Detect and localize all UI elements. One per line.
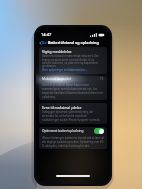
staticText: Batteriets tilstand er væsentligt reduce…	[42, 54, 104, 67]
other: Optimeret batteriopladning til	[94, 128, 104, 134]
staticText: Batteri	[42, 40, 54, 45]
button[interactable]: Maksimal kapacitet	[39, 76, 107, 82]
button[interactable]: Optimeret batteriopladning	[39, 127, 107, 135]
staticText: Til	[100, 77, 104, 81]
staticText: Batteritilstand og opladning	[48, 40, 99, 45]
staticText: Optimeret batteriopladning	[42, 129, 84, 133]
button[interactable]: Vigtig meddelelse	[39, 47, 107, 74]
button[interactable]: Evne til maksimal ydelse	[39, 103, 107, 124]
staticText: Vigtig meddelelse	[42, 49, 72, 54]
staticText: 14:47	[41, 32, 52, 37]
button[interactable]: Flere oplysninger om batteriservice…	[42, 68, 88, 72]
staticText: Indbygget dynamisk ydeevnestyring, der a…	[42, 110, 104, 122]
button[interactable]: Batteri	[38, 39, 55, 46]
staticText: Dette er et mål for batterikapaciteten s…	[42, 83, 104, 99]
staticText: Maksimal kapacitet	[42, 77, 71, 81]
staticText: Evne til maksimal ydelse	[42, 105, 82, 109]
staticText: iPhone forlænger batteriets levetid ved …	[42, 136, 104, 148]
